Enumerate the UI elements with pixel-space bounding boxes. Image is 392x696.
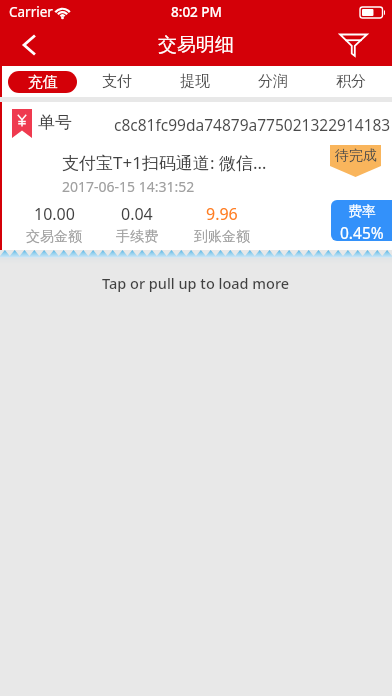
staticText: 单号 bbox=[38, 112, 72, 133]
staticText: 交易明细 bbox=[158, 33, 234, 57]
button[interactable]: 充值 bbox=[0, 66, 78, 97]
staticText: 0.45% bbox=[340, 222, 384, 241]
staticText: 积分 bbox=[336, 72, 366, 91]
staticText: 到账金额 bbox=[194, 228, 250, 246]
button[interactable]: 支付 bbox=[78, 66, 156, 97]
staticText: Carrier bbox=[9, 3, 53, 21]
staticText: 8:02 PM bbox=[171, 3, 222, 21]
button[interactable]: 分润 bbox=[234, 66, 312, 97]
button[interactable]: Filter bbox=[340, 24, 392, 66]
staticText: 分润 bbox=[258, 72, 288, 91]
staticText: 充值 bbox=[28, 73, 58, 92]
staticText: 9.96 bbox=[206, 203, 238, 225]
staticText: c8c81fc99da74879a775021322914183 bbox=[114, 114, 391, 135]
button[interactable]: 积分 bbox=[312, 66, 390, 97]
staticText: 交易金额 bbox=[26, 228, 82, 246]
staticText: 手续费 bbox=[116, 228, 158, 246]
staticText: 提现 bbox=[180, 72, 210, 91]
button[interactable]: Back bbox=[0, 24, 52, 66]
staticText: 0.04 bbox=[121, 203, 153, 225]
button[interactable]: 待完成 bbox=[330, 145, 381, 177]
staticText: 支付宝T+1扫码通道: 微信… bbox=[62, 151, 267, 174]
button[interactable]: 提现 bbox=[156, 66, 234, 97]
staticText: 支付 bbox=[102, 72, 132, 91]
staticText: 2017-06-15 14:31:52 bbox=[62, 177, 195, 196]
staticText: 待完成 bbox=[335, 147, 377, 165]
staticText: Tap or pull up to load more bbox=[102, 273, 290, 293]
staticText: 费率 bbox=[348, 203, 376, 221]
button[interactable]: 费率 bbox=[331, 200, 392, 241]
staticText: 10.00 bbox=[34, 203, 75, 225]
